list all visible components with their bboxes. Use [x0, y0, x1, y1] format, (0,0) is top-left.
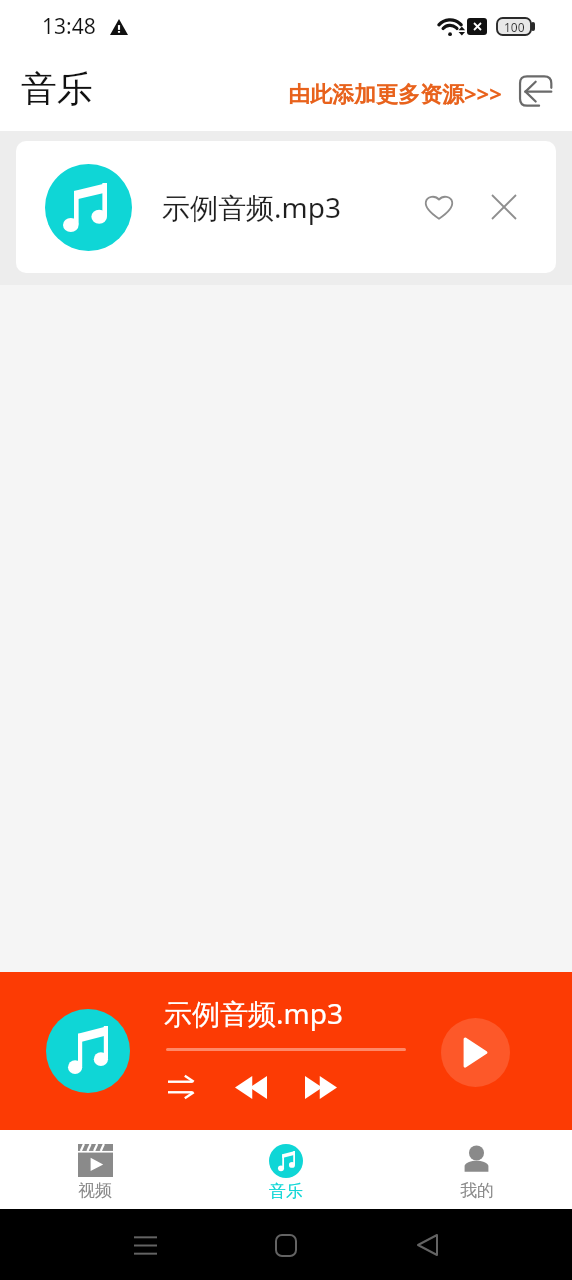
button[interactable]: 我的 — [381, 1130, 572, 1209]
staticText: 13:48 — [42, 12, 96, 41]
button[interactable]: Remove — [483, 186, 525, 228]
button[interactable]: Back — [394, 1212, 460, 1278]
button[interactable]: 视频 — [0, 1130, 190, 1209]
button[interactable]: Home — [253, 1212, 319, 1278]
staticText: 音乐 — [269, 1181, 303, 1202]
button[interactable]: Seek — [166, 1048, 406, 1051]
button[interactable]: Favorite — [418, 186, 460, 228]
staticText: 我的 — [460, 1180, 494, 1201]
button[interactable]: Next — [299, 1065, 343, 1109]
button[interactable]: 由此添加更多资源>>> — [282, 70, 508, 116]
button[interactable]: Now playing — [46, 1009, 130, 1093]
staticText: 音乐 — [21, 66, 93, 111]
staticText: 100 — [504, 19, 525, 35]
staticText: 示例音频.mp3 — [164, 994, 343, 1032]
button[interactable]: Exit — [512, 68, 558, 114]
button[interactable]: Previous — [229, 1065, 273, 1109]
button[interactable]: 示例音频.mp3 — [16, 141, 556, 273]
button[interactable]: Play mode — [160, 1065, 204, 1109]
staticText: 视频 — [78, 1180, 112, 1201]
button[interactable]: 音乐 — [190, 1130, 381, 1209]
button[interactable]: Play — [441, 1018, 510, 1087]
button[interactable]: Recents — [112, 1212, 178, 1278]
staticText: 示例音频.mp3 — [162, 188, 341, 226]
staticText: 由此添加更多资源>>> — [288, 78, 502, 108]
